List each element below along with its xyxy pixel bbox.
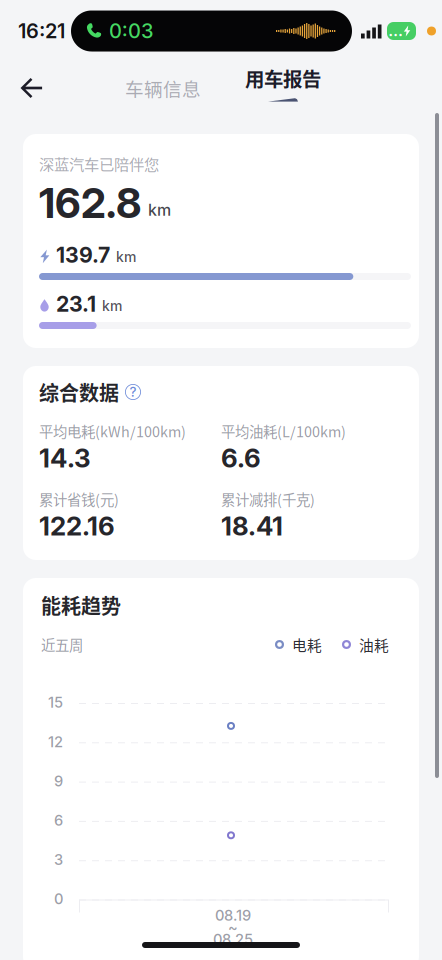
staticText: 用车报告 <box>245 64 321 92</box>
staticText: 累计省钱(元) <box>39 489 119 509</box>
button[interactable]: 用车报告 <box>238 63 328 113</box>
button[interactable]: 返回 <box>0 65 62 111</box>
staticText: 9 <box>54 772 63 790</box>
staticText: 油耗 <box>359 634 389 655</box>
staticText: 14.3 <box>39 442 91 474</box>
staticText: 平均电耗(kWh/100km) <box>39 421 186 441</box>
staticText: 电耗 <box>292 634 322 655</box>
staticText: km <box>148 200 171 220</box>
staticText: 平均油耗(L/100km) <box>221 421 346 441</box>
staticText: 122.16 <box>39 510 115 542</box>
staticText: ~ <box>228 919 238 936</box>
staticText: 16:21 <box>18 19 65 43</box>
staticText: km <box>116 248 136 265</box>
staticText: 15 <box>48 694 63 711</box>
staticText: 3 <box>54 851 63 868</box>
button[interactable]: 说明 <box>125 384 141 400</box>
staticText: 6.6 <box>221 442 261 474</box>
staticText: 车辆信息 <box>125 74 201 101</box>
button[interactable]: 车辆信息 <box>118 65 208 111</box>
staticText: 96 <box>388 22 403 40</box>
staticText: 深蓝汽车已陪伴您 <box>39 152 159 175</box>
staticText: 6 <box>54 811 63 829</box>
staticText: 近五周 <box>41 634 83 655</box>
staticText: 0:03 <box>109 19 154 43</box>
staticText: 08.19 <box>215 907 251 924</box>
staticText: 累计减排(千克) <box>221 489 315 509</box>
staticText: km <box>102 297 122 314</box>
staticText: 08.25 <box>213 931 253 948</box>
staticText: 能耗趋势 <box>41 590 121 619</box>
staticText: 18.41 <box>221 510 283 542</box>
staticText: ? <box>129 384 136 400</box>
staticText: 23.1 <box>56 291 96 317</box>
staticText: 0 <box>54 890 63 908</box>
staticText: 139.7 <box>56 242 110 268</box>
staticText: 162.8 <box>39 178 141 228</box>
staticText: 综合数据 <box>39 377 119 406</box>
staticText: 12 <box>48 733 63 751</box>
